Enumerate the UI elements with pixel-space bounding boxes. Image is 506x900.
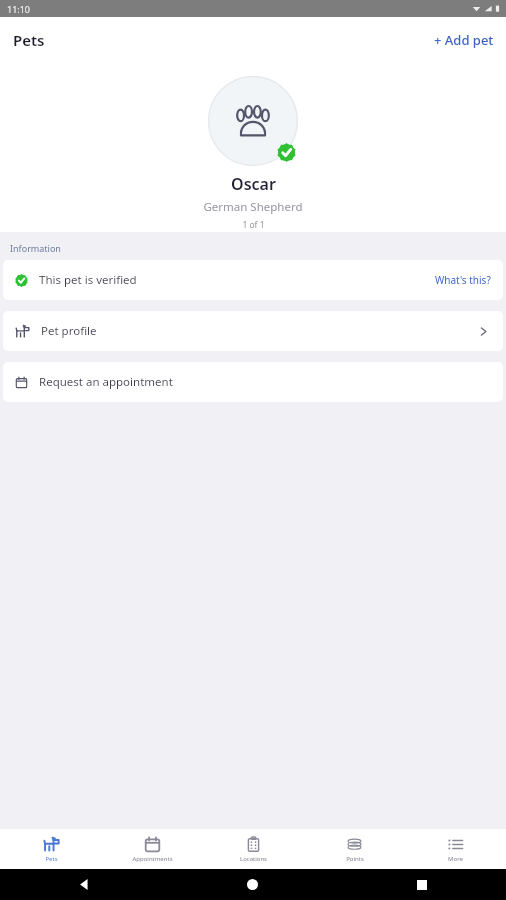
other: Home [168, 879, 337, 890]
staticText: German Shepherd [203, 199, 303, 215]
button[interactable]: This pet is verified [3, 260, 503, 300]
staticText: Pets [45, 855, 58, 863]
other: Back [0, 879, 168, 890]
staticText: Pet profile [41, 323, 97, 339]
button[interactable]: Points [304, 836, 405, 863]
staticText: 11:10 [7, 3, 31, 15]
button[interactable]: Appointments [102, 836, 203, 863]
staticText: Request an appointment [39, 374, 173, 390]
staticText: What's this? [435, 273, 491, 287]
staticText: Points [346, 855, 364, 863]
staticText: Locations [240, 855, 267, 863]
staticText: + Add pet [434, 31, 494, 49]
button[interactable]: Locations [203, 836, 304, 863]
button[interactable]: More [405, 836, 506, 863]
staticText: Oscar [231, 173, 276, 195]
button[interactable]: + Add pet [422, 23, 506, 57]
button[interactable]: Pets [0, 836, 102, 863]
other: Recents [337, 880, 506, 890]
button[interactable]: Pet profile [3, 311, 503, 351]
staticText: Appointments [132, 855, 173, 863]
staticText: Information [10, 242, 61, 254]
button[interactable]: Request an appointment [3, 362, 503, 402]
staticText: More [448, 855, 463, 863]
staticText: This pet is verified [39, 272, 137, 288]
staticText: Pets [13, 30, 45, 50]
staticText: 1 of 1 [242, 219, 265, 231]
